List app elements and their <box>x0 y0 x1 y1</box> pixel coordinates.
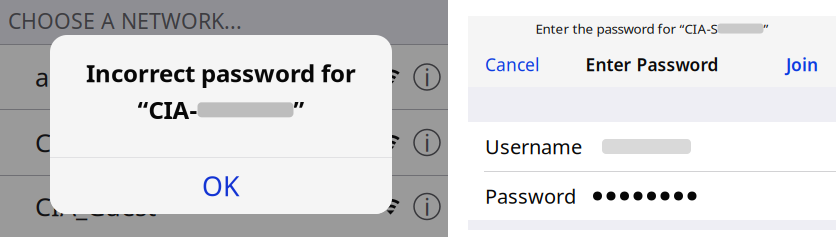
button[interactable]: Join <box>780 46 824 83</box>
staticText: an... <box>35 60 86 94</box>
staticText: Enter Password <box>585 53 718 76</box>
staticText: Join <box>786 53 818 76</box>
button[interactable]: Cancel <box>479 46 545 83</box>
button[interactable]: CI... <box>0 110 448 175</box>
staticText: Cancel <box>485 53 539 76</box>
staticText: “CIA- <box>137 94 197 126</box>
staticText: ” <box>293 94 304 126</box>
staticText: CHOOSE A NETWORK... <box>8 7 242 35</box>
staticText: i <box>424 127 430 158</box>
staticText: Password <box>485 183 576 209</box>
staticText: Username <box>485 133 582 160</box>
staticText: i <box>424 191 430 222</box>
staticText: Enter the password for “CIA-S <box>535 20 717 37</box>
staticText: OK <box>202 168 240 204</box>
button[interactable]: Username <box>468 122 836 171</box>
button[interactable]: Password <box>468 172 836 220</box>
staticText: ” <box>763 20 768 37</box>
staticText: CIA_Guest <box>35 190 156 223</box>
button[interactable]: OK <box>50 158 392 214</box>
button[interactable]: an... <box>0 45 448 109</box>
staticText: Incorrect password for <box>86 57 356 89</box>
staticText: i <box>424 61 430 93</box>
button[interactable]: CIA_Guest <box>0 176 448 237</box>
staticText: CI... <box>35 126 81 159</box>
